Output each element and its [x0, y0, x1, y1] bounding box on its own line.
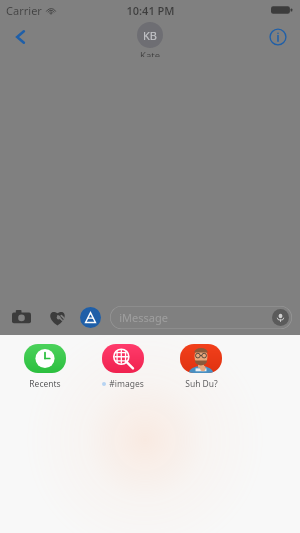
button[interactable]: KB [129, 20, 171, 57]
staticText: Recents [29, 378, 61, 390]
button[interactable]: iMessage [110, 306, 292, 329]
staticText: 10:41 PM [126, 3, 175, 18]
staticText: #images [109, 378, 144, 390]
button[interactable]: #images [92, 343, 154, 390]
button[interactable]: App Store [80, 307, 101, 328]
staticText: KB [143, 28, 157, 43]
button[interactable]: Suh Du? [170, 343, 232, 390]
staticText: Carrier [6, 3, 42, 18]
button[interactable]: Digital Touch [44, 304, 70, 330]
button[interactable]: Camera [8, 304, 34, 330]
button[interactable]: Recents [14, 343, 76, 390]
button[interactable]: Back [4, 20, 38, 54]
button[interactable]: Dictate [272, 309, 289, 326]
button[interactable]: Details [261, 20, 295, 54]
staticText: iMessage [119, 310, 168, 325]
staticText: Kate [140, 49, 160, 57]
staticText: Suh Du? [185, 378, 218, 390]
